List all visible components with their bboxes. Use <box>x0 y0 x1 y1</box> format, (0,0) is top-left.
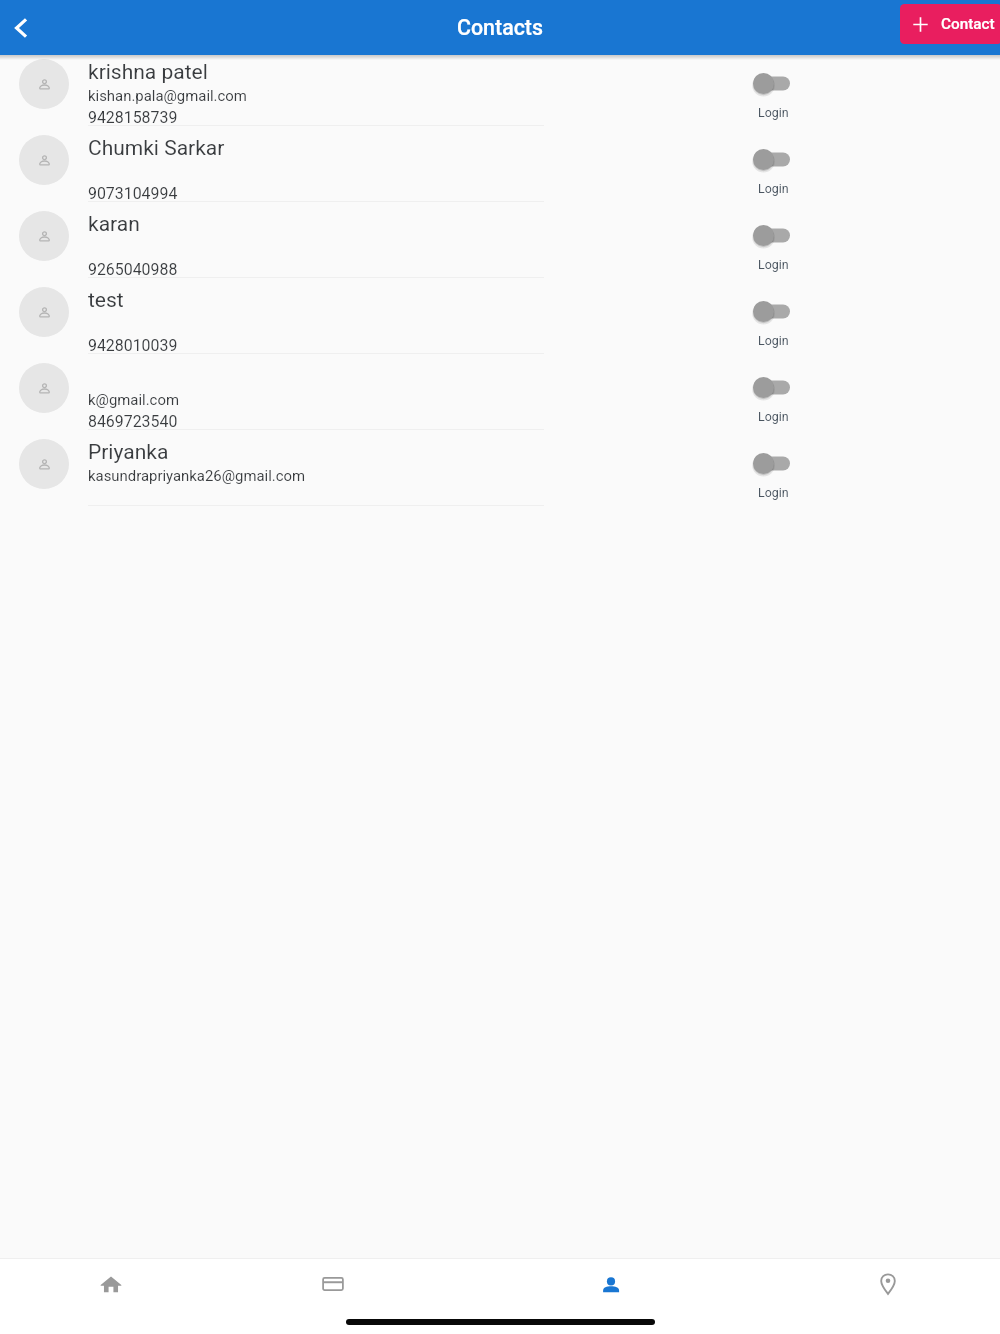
button[interactable]: Login <box>752 149 792 196</box>
button[interactable]: Login <box>752 73 792 120</box>
button[interactable]: Back <box>0 6 43 50</box>
button[interactable]: k@gmail.com <box>0 354 1000 430</box>
button[interactable]: Cards <box>307 1258 359 1310</box>
button[interactable]: Location <box>862 1258 914 1310</box>
button[interactable]: Home <box>85 1258 137 1310</box>
staticText: Login <box>758 257 789 272</box>
staticText: 9265040988 <box>88 260 178 279</box>
staticText: krishna patel <box>88 60 208 85</box>
button[interactable]: test <box>0 278 1000 354</box>
staticText: k@gmail.com <box>88 391 179 408</box>
staticText: Contacts <box>457 15 543 40</box>
staticText: kishan.pala@gmail.com <box>88 87 247 104</box>
staticText: 9428158739 <box>88 108 178 127</box>
button[interactable]: Chumki Sarkar <box>0 126 1000 202</box>
button[interactable]: karan <box>0 202 1000 278</box>
staticText: Chumki Sarkar <box>88 136 225 161</box>
staticText: karan <box>88 212 140 237</box>
button[interactable]: Contact <box>900 4 1000 44</box>
button[interactable]: Login <box>752 225 792 272</box>
staticText: Priyanka <box>88 440 169 465</box>
staticText: test <box>88 288 124 313</box>
button[interactable]: Login <box>752 377 792 424</box>
button[interactable]: Priyanka <box>0 430 1000 506</box>
button[interactable]: Login <box>752 301 792 348</box>
staticText: kasundrapriyanka26@gmail.com <box>88 467 306 484</box>
button[interactable]: Profile <box>585 1258 637 1310</box>
staticText: Contact <box>941 15 995 33</box>
staticText: 9428010039 <box>88 336 178 355</box>
staticText: Login <box>758 409 789 424</box>
staticText: Login <box>758 105 789 120</box>
staticText: 9073104994 <box>88 184 178 203</box>
staticText: Login <box>758 485 789 500</box>
staticText: 8469723540 <box>88 412 178 431</box>
button[interactable]: Login <box>752 453 792 500</box>
staticText: Login <box>758 181 789 196</box>
staticText: Login <box>758 333 789 348</box>
button[interactable]: krishna patel <box>0 50 1000 126</box>
